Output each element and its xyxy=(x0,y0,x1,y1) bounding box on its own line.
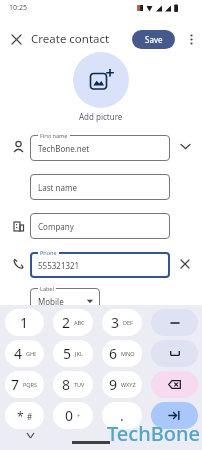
button[interactable]: 555321321 xyxy=(30,249,170,278)
staticText: Save xyxy=(145,34,163,45)
staticText: 8 xyxy=(62,375,71,394)
staticText: JKL xyxy=(75,350,83,357)
button[interactable]: 8 xyxy=(53,371,93,398)
button[interactable]: 4 xyxy=(5,340,44,367)
button[interactable] xyxy=(9,32,23,46)
button[interactable]: 0 xyxy=(53,402,93,429)
button[interactable]: 1 xyxy=(5,309,44,336)
button[interactable]: 7 xyxy=(5,371,44,398)
button[interactable]: Save xyxy=(132,30,175,49)
staticText: TUV xyxy=(74,381,85,388)
staticText: GHI xyxy=(26,350,36,357)
button[interactable] xyxy=(151,309,198,336)
staticText: . xyxy=(120,406,124,425)
staticText: 9 xyxy=(109,375,118,394)
button[interactable]: 3 xyxy=(102,309,142,336)
button[interactable]: 6 xyxy=(102,340,142,367)
staticText: WXYZ xyxy=(121,381,136,388)
staticText: ABC xyxy=(74,319,85,326)
staticText: Label xyxy=(40,285,54,292)
button[interactable]: Add picture xyxy=(79,111,123,122)
button[interactable] xyxy=(185,33,197,45)
staticText: 6 xyxy=(109,344,118,363)
button[interactable] xyxy=(151,402,198,429)
staticText: 555321321 xyxy=(38,260,80,271)
staticText: Last name xyxy=(38,182,77,193)
staticText: + xyxy=(77,412,81,419)
staticText: 2 xyxy=(62,313,71,332)
staticText: Add picture xyxy=(79,111,123,122)
staticText: MNO xyxy=(121,350,135,357)
staticText: 1 xyxy=(20,313,29,332)
button[interactable]: * xyxy=(5,402,44,429)
staticText: 7 xyxy=(11,375,20,394)
button[interactable]: . xyxy=(102,402,142,429)
staticText: First name xyxy=(40,132,68,139)
staticText: 0 xyxy=(65,406,74,425)
staticText: * xyxy=(17,408,24,424)
button[interactable]: 9 xyxy=(102,371,142,398)
staticText: TechBone.net xyxy=(38,143,90,154)
staticText: DEF xyxy=(123,319,133,326)
staticText: 3 xyxy=(111,313,120,332)
staticText: 10:25 xyxy=(9,3,27,13)
staticText: PQRS xyxy=(23,381,38,388)
button[interactable]: TechBone.net xyxy=(30,132,170,161)
staticText: TechBone xyxy=(107,420,200,447)
button[interactable]: 5 xyxy=(53,340,93,367)
button[interactable] xyxy=(151,371,198,398)
button[interactable]: Mobile xyxy=(30,285,100,314)
staticText: 4 xyxy=(14,344,23,363)
staticText: Create contact xyxy=(31,31,110,47)
staticText: Phone xyxy=(40,249,57,256)
button[interactable]: 2 xyxy=(53,309,93,336)
staticText: Mobile xyxy=(38,296,64,307)
staticText: 5 xyxy=(63,344,72,363)
button[interactable]: Company xyxy=(30,213,170,239)
button[interactable] xyxy=(151,340,198,367)
button[interactable] xyxy=(73,52,129,108)
button[interactable]: Last name xyxy=(30,174,170,200)
staticText: # xyxy=(27,411,33,422)
staticText: Company xyxy=(38,221,74,232)
